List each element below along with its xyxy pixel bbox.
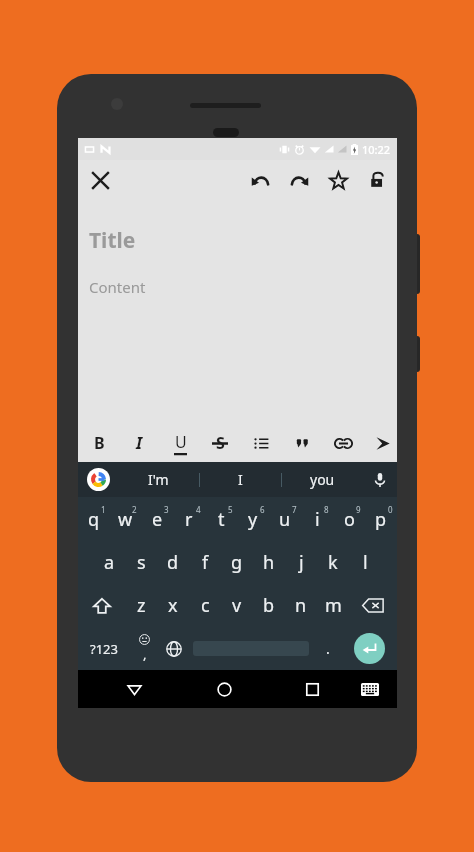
staticText: ,	[143, 645, 147, 663]
button[interactable]: Google search	[78, 462, 118, 497]
button[interactable]: Backspace	[349, 584, 397, 627]
button[interactable]: I	[200, 462, 281, 497]
staticText: a	[104, 550, 115, 575]
button[interactable]: Quote	[290, 430, 316, 456]
button[interactable]: g	[221, 541, 253, 584]
staticText: 9	[356, 504, 361, 515]
button[interactable]: Italic	[126, 430, 152, 456]
staticText: 2	[132, 504, 137, 515]
button[interactable]: Hide keyboard	[355, 674, 385, 704]
staticText: e	[152, 507, 163, 532]
button[interactable]: Change language	[159, 627, 188, 670]
staticText: l	[363, 550, 368, 575]
staticText: 6	[260, 504, 265, 515]
staticText: k	[328, 550, 338, 575]
staticText: n	[295, 593, 307, 618]
staticText: m	[325, 593, 342, 618]
staticText: g	[231, 550, 243, 575]
button[interactable]: ?123	[78, 627, 130, 670]
staticText: r	[185, 507, 193, 532]
button[interactable]: Shift	[78, 584, 125, 627]
button[interactable]: Redo	[284, 165, 314, 195]
button[interactable]: r	[173, 497, 205, 541]
button[interactable]: h	[253, 541, 285, 584]
staticText: q	[88, 507, 100, 532]
button[interactable]: Recent apps	[295, 672, 329, 706]
button[interactable]: Favorite	[323, 165, 353, 195]
button[interactable]: z	[125, 584, 157, 627]
button[interactable]: e	[141, 497, 173, 541]
staticText: z	[137, 593, 146, 618]
staticText: I'm	[148, 470, 169, 489]
button[interactable]: f	[189, 541, 221, 584]
button[interactable]: Close	[85, 165, 116, 196]
button[interactable]: l	[349, 541, 381, 584]
staticText: v	[232, 593, 242, 618]
button[interactable]: u	[269, 497, 301, 541]
staticText: f	[202, 550, 209, 575]
staticText: 10:22	[362, 142, 391, 157]
button[interactable]: Emoji	[130, 627, 159, 670]
button[interactable]: you	[282, 462, 363, 497]
staticText: U	[175, 431, 187, 453]
staticText: you	[310, 470, 335, 489]
staticText: y	[248, 507, 258, 532]
button[interactable]: s	[125, 541, 157, 584]
staticText: c	[201, 593, 210, 618]
button[interactable]: t	[205, 497, 237, 541]
staticText: 0	[388, 504, 393, 515]
button[interactable]: Underline	[167, 430, 193, 456]
staticText: s	[137, 550, 146, 575]
button[interactable]: Undo	[245, 165, 275, 195]
staticText: o	[344, 507, 355, 532]
button[interactable]: y	[237, 497, 269, 541]
staticText: Content	[89, 277, 146, 297]
button[interactable]: .	[313, 627, 342, 670]
button[interactable]: k	[317, 541, 349, 584]
staticText: 4	[196, 504, 201, 515]
button[interactable]: Bulleted list	[248, 430, 274, 456]
staticText: .	[326, 639, 330, 658]
staticText: w	[118, 507, 133, 532]
button[interactable]: Strikethrough	[207, 430, 233, 456]
button[interactable]: p	[365, 497, 397, 541]
button[interactable]: i	[301, 497, 333, 541]
button[interactable]: I'm	[118, 462, 199, 497]
button[interactable]: Home	[207, 672, 241, 706]
staticText: S	[216, 432, 225, 454]
button[interactable]: Back	[117, 672, 151, 706]
staticText: 8	[324, 504, 329, 515]
button[interactable]: n	[285, 584, 317, 627]
button[interactable]: b	[253, 584, 285, 627]
staticText: t	[218, 507, 225, 532]
staticText: ?123	[90, 640, 118, 658]
staticText: 1	[101, 504, 106, 515]
staticText: 5	[228, 504, 233, 515]
button[interactable]: Bold	[86, 430, 112, 456]
button[interactable]: Enter	[342, 627, 397, 670]
staticText: u	[279, 507, 291, 532]
staticText: h	[263, 550, 275, 575]
button[interactable]: q	[78, 497, 109, 541]
button[interactable]: a	[93, 541, 125, 584]
button[interactable]: Voice input	[363, 462, 397, 497]
button[interactable]: Insert link	[330, 430, 356, 456]
button[interactable]: o	[333, 497, 365, 541]
staticText: Title	[89, 226, 136, 255]
button[interactable]: v	[221, 584, 253, 627]
button[interactable]: Space	[188, 627, 313, 670]
button[interactable]: More formatting	[369, 430, 395, 456]
button[interactable]: d	[157, 541, 189, 584]
staticText: I	[136, 432, 143, 454]
button[interactable]: c	[189, 584, 221, 627]
staticText: p	[375, 507, 387, 532]
staticText: b	[263, 593, 275, 618]
staticText: d	[167, 550, 179, 575]
button[interactable]: x	[157, 584, 189, 627]
button[interactable]: w	[109, 497, 141, 541]
button[interactable]: Lock note	[362, 165, 392, 195]
button[interactable]: j	[285, 541, 317, 584]
staticText: x	[168, 593, 178, 618]
staticText: j	[299, 550, 304, 575]
button[interactable]: m	[317, 584, 349, 627]
